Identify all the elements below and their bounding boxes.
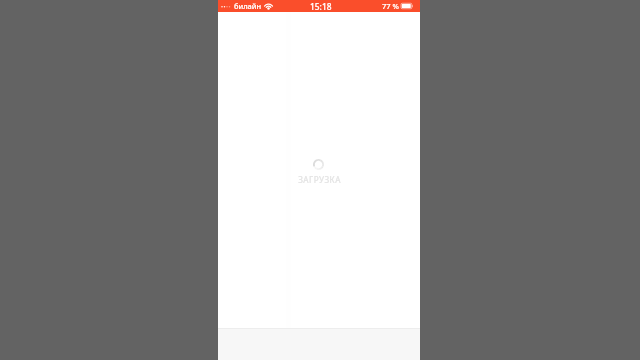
other: Wi-Fi (264, 3, 273, 10)
staticText: 15:18 (310, 1, 332, 12)
staticText: билайн (234, 1, 262, 11)
other: Заряд батареи 77 % (401, 2, 414, 10)
other: Уровень сигнала (221, 3, 231, 10)
staticText: 77 % (382, 1, 399, 11)
staticText: ЗАГРУЗКА (298, 174, 341, 185)
button[interactable]: Загрузка (292, 157, 347, 187)
